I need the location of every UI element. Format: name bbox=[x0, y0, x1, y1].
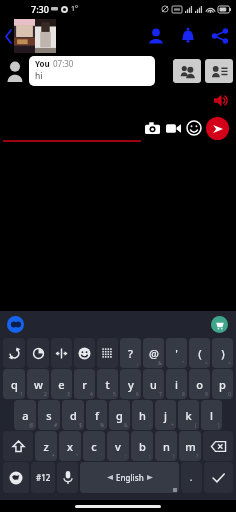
button[interactable]: Group members bbox=[173, 59, 201, 83]
button[interactable]: Contacts bbox=[144, 24, 168, 48]
staticText: & bbox=[124, 422, 128, 429]
button[interactable]: r bbox=[74, 369, 95, 399]
button[interactable]: Keyboard assistant bbox=[7, 316, 24, 333]
button[interactable]: Share bbox=[208, 24, 232, 48]
button[interactable]: x bbox=[59, 431, 81, 461]
button[interactable]: Backspace bbox=[203, 431, 233, 461]
staticText: 8 bbox=[182, 391, 185, 398]
staticText: o bbox=[196, 377, 203, 392]
staticText: w bbox=[34, 377, 43, 392]
button[interactable]: ) bbox=[212, 338, 233, 368]
staticText: m bbox=[185, 439, 196, 454]
staticText: v bbox=[115, 439, 121, 454]
staticText: + bbox=[171, 422, 174, 429]
button[interactable] bbox=[75, 505, 161, 508]
button[interactable] bbox=[3, 114, 141, 142]
button[interactable]: w bbox=[27, 369, 49, 399]
staticText: ( bbox=[198, 346, 202, 361]
staticText: ! bbox=[173, 453, 175, 460]
staticText: h bbox=[139, 408, 146, 423]
button[interactable]: g bbox=[109, 400, 130, 430]
staticText: ' bbox=[175, 346, 178, 361]
button[interactable]: m bbox=[179, 431, 201, 461]
staticText: q bbox=[11, 377, 18, 392]
button[interactable]: l bbox=[201, 400, 222, 430]
staticText: f bbox=[95, 408, 99, 423]
button[interactable]: Send bbox=[206, 117, 229, 140]
staticText: #12 bbox=[36, 472, 51, 483]
button[interactable]: t bbox=[97, 369, 118, 399]
button[interactable]: h bbox=[132, 400, 153, 430]
button[interactable]: p bbox=[212, 369, 233, 399]
button[interactable]: e bbox=[51, 369, 72, 399]
button[interactable]: Shift bbox=[3, 431, 33, 461]
button[interactable]: c bbox=[83, 431, 105, 461]
button[interactable]: Space, English bbox=[80, 462, 179, 493]
button[interactable]: u bbox=[143, 369, 164, 399]
button[interactable]: . bbox=[181, 462, 202, 493]
button[interactable]: Member list bbox=[205, 59, 233, 83]
button[interactable]: v bbox=[107, 431, 129, 461]
staticText: , bbox=[137, 360, 139, 367]
staticText: < bbox=[205, 360, 208, 367]
staticText: # bbox=[54, 422, 58, 429]
staticText: g bbox=[116, 408, 123, 423]
staticText: x bbox=[67, 439, 73, 454]
staticText: " bbox=[76, 453, 79, 460]
button[interactable]: You bbox=[29, 56, 155, 86]
staticText: p bbox=[219, 377, 226, 392]
button[interactable]: Notifications bbox=[176, 24, 200, 48]
button[interactable]: Emoji bbox=[185, 119, 203, 137]
button[interactable]: z bbox=[35, 431, 57, 461]
button[interactable]: Speaker bbox=[211, 90, 231, 110]
staticText: 6 bbox=[136, 391, 139, 398]
button[interactable]: #12 bbox=[31, 462, 55, 493]
staticText: i bbox=[175, 377, 178, 392]
button[interactable]: q bbox=[3, 369, 25, 399]
staticText: & bbox=[158, 360, 162, 367]
button[interactable]: Shop bbox=[211, 316, 228, 333]
staticText: e bbox=[58, 377, 65, 392]
button[interactable]: i bbox=[166, 369, 187, 399]
button[interactable]: ( bbox=[189, 338, 210, 368]
staticText: c bbox=[91, 439, 97, 454]
button[interactable]: k bbox=[178, 400, 199, 430]
button[interactable]: ? bbox=[120, 338, 141, 368]
staticText: @ bbox=[29, 422, 34, 429]
button[interactable]: Key bbox=[74, 338, 95, 368]
staticText: u bbox=[150, 377, 157, 392]
staticText: * bbox=[52, 453, 55, 460]
button[interactable]: Key bbox=[97, 338, 118, 368]
button[interactable]: @ bbox=[143, 338, 164, 368]
button[interactable]: Enter bbox=[204, 462, 233, 493]
button[interactable] bbox=[14, 19, 56, 53]
button[interactable]: y bbox=[120, 369, 141, 399]
staticText: % bbox=[100, 422, 105, 429]
button[interactable]: Voice input bbox=[57, 462, 78, 493]
staticText: r bbox=[82, 377, 87, 392]
staticText: > bbox=[228, 360, 231, 367]
staticText: 7:30 bbox=[31, 3, 49, 15]
button[interactable]: Key bbox=[27, 338, 49, 368]
button[interactable]: Key bbox=[51, 338, 72, 368]
staticText: k bbox=[185, 408, 192, 423]
button[interactable]: Camera bbox=[143, 119, 161, 137]
button[interactable]: j bbox=[155, 400, 176, 430]
button[interactable]: Language bbox=[3, 462, 29, 493]
button[interactable]: a bbox=[14, 400, 36, 430]
button[interactable]: d bbox=[62, 400, 84, 430]
staticText: @ bbox=[149, 346, 159, 361]
staticText: ? bbox=[128, 346, 133, 361]
staticText: : bbox=[125, 453, 127, 460]
staticText: 5 bbox=[113, 391, 116, 398]
staticText: j bbox=[164, 408, 167, 423]
button[interactable]: Back bbox=[1, 24, 15, 48]
button[interactable]: n bbox=[155, 431, 177, 461]
button[interactable]: Key bbox=[3, 338, 25, 368]
button[interactable]: f bbox=[86, 400, 107, 430]
button[interactable]: b bbox=[131, 431, 153, 461]
button[interactable]: Video bbox=[164, 119, 182, 137]
button[interactable]: ' bbox=[166, 338, 187, 368]
button[interactable]: s bbox=[38, 400, 60, 430]
button[interactable]: o bbox=[189, 369, 210, 399]
